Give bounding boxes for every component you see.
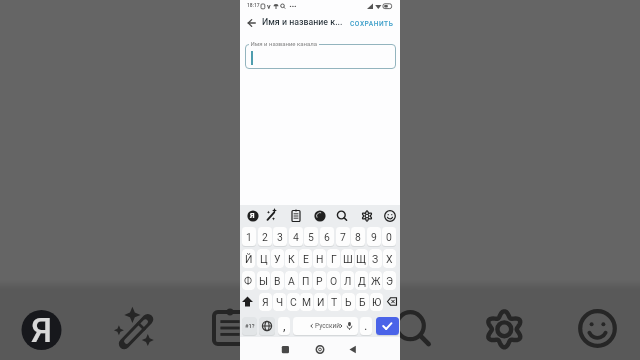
staticText: , [283, 318, 286, 333]
staticText: П [302, 275, 310, 287]
staticText: З [372, 253, 379, 265]
staticText: А [288, 275, 295, 287]
staticText: Ь [345, 296, 352, 308]
staticText: 8 [355, 231, 361, 243]
staticText: С [290, 296, 297, 308]
staticText: Ы [259, 275, 268, 287]
staticText: К [288, 253, 295, 265]
staticText: Я [31, 310, 53, 350]
staticText: СОХРАНИТЬ [350, 20, 394, 28]
staticText: 9 [371, 231, 377, 243]
staticText: Б [359, 296, 366, 308]
staticText: Ю [372, 296, 382, 308]
staticText: Щ [356, 253, 367, 265]
staticText: Р [316, 275, 323, 287]
staticText: Э [386, 275, 394, 287]
staticText: Я [250, 211, 255, 220]
staticText: О [330, 275, 338, 287]
staticText: 3 [277, 231, 283, 243]
staticText: У [274, 253, 281, 265]
staticText: Л [344, 275, 352, 287]
staticText: Ж [371, 275, 381, 287]
staticText: Й [245, 253, 253, 265]
staticText: Г [331, 253, 337, 265]
staticText: Я [262, 296, 269, 308]
staticText: 0 [386, 231, 392, 243]
staticText: Ц [260, 253, 268, 265]
staticText: И [317, 296, 325, 308]
staticText: 1 [246, 231, 252, 243]
staticText: Е [303, 253, 309, 265]
staticText: 5 [308, 231, 314, 243]
staticText: Т [331, 296, 338, 308]
staticText: Имя и название к... [262, 17, 343, 27]
staticText: Н [316, 253, 324, 265]
staticText: Имя и название канала [249, 40, 319, 47]
staticText: В [274, 275, 281, 287]
staticText: М [302, 296, 312, 308]
staticText: . [364, 318, 368, 333]
staticText: 6 [324, 231, 330, 243]
staticText: Х [386, 253, 393, 265]
staticText: Ф [244, 275, 253, 287]
staticText: Русский [315, 322, 341, 330]
staticText: 4 [293, 231, 299, 243]
staticText: 18:17 [247, 2, 260, 8]
staticText: Ч [276, 296, 284, 308]
staticText: 7 [340, 231, 346, 243]
staticText: #1? [245, 323, 255, 330]
staticText: Д [358, 275, 366, 287]
staticText: 2 [262, 231, 268, 243]
staticText: Ш [343, 253, 353, 265]
